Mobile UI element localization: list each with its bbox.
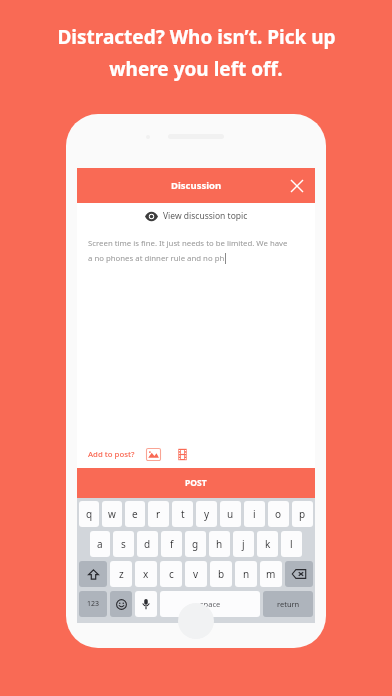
- button[interactable]: v: [185, 561, 207, 587]
- button[interactable]: Add to post?: [88, 449, 135, 460]
- staticText: l: [290, 537, 293, 551]
- button[interactable]: space: [160, 591, 260, 617]
- button[interactable]: g: [185, 531, 206, 557]
- staticText: Screen time is fine. It just needs to be…: [88, 238, 288, 249]
- staticText: v: [193, 567, 199, 581]
- staticText: w: [108, 507, 116, 521]
- staticText: g: [192, 537, 199, 551]
- button[interactable]: p: [292, 501, 313, 527]
- button[interactable]: z: [110, 561, 132, 587]
- button[interactable]: s: [113, 531, 134, 557]
- button[interactable]: w: [102, 501, 122, 527]
- button[interactable]: Close: [286, 175, 308, 197]
- staticText: space: [200, 599, 221, 609]
- button[interactable]: a: [90, 531, 110, 557]
- button[interactable]: Dictate: [135, 591, 157, 617]
- button[interactable]: Emoji: [110, 591, 132, 617]
- staticText: 123: [87, 599, 100, 609]
- button[interactable]: x: [135, 561, 157, 587]
- button[interactable]: Add video: [175, 447, 190, 462]
- button[interactable]: t: [172, 501, 193, 527]
- button[interactable]: e: [125, 501, 145, 527]
- staticText: d: [144, 537, 151, 551]
- staticText: Distracted? Who isn’t. Pick up: [57, 24, 336, 50]
- staticText: i: [253, 507, 256, 521]
- button[interactable]: Discussion: [77, 168, 315, 203]
- staticText: e: [132, 507, 138, 521]
- button[interactable]: l: [281, 531, 302, 557]
- staticText: where you left off.: [109, 56, 283, 82]
- button[interactable]: j: [233, 531, 254, 557]
- button[interactable]: 123: [79, 591, 107, 617]
- staticText: k: [265, 537, 271, 551]
- button[interactable]: Shift: [79, 561, 107, 587]
- staticText: t: [181, 507, 185, 521]
- staticText: f: [170, 537, 174, 551]
- staticText: u: [227, 507, 234, 521]
- button[interactable]: d: [137, 531, 158, 557]
- staticText: c: [169, 567, 174, 581]
- button[interactable]: POST: [77, 468, 315, 498]
- button[interactable]: View discussion topic: [77, 203, 315, 229]
- button[interactable]: b: [210, 561, 232, 587]
- staticText: p: [299, 507, 306, 521]
- staticText: z: [119, 567, 124, 581]
- button[interactable]: Add photo: [146, 447, 161, 462]
- button[interactable]: q: [79, 501, 99, 527]
- button[interactable]: k: [257, 531, 278, 557]
- button[interactable]: m: [260, 561, 282, 587]
- staticText: q: [86, 507, 93, 521]
- staticText: o: [275, 507, 282, 521]
- button[interactable]: return: [263, 591, 313, 617]
- button[interactable]: o: [268, 501, 289, 527]
- staticText: return: [277, 599, 300, 609]
- staticText: h: [216, 537, 223, 551]
- button[interactable]: y: [196, 501, 217, 527]
- button[interactable]: f: [161, 531, 182, 557]
- button[interactable]: c: [160, 561, 182, 587]
- staticText: y: [204, 507, 210, 521]
- button[interactable]: Backspace: [285, 561, 313, 587]
- button[interactable]: i: [244, 501, 265, 527]
- button[interactable]: h: [209, 531, 230, 557]
- button[interactable]: u: [220, 501, 241, 527]
- staticText: s: [121, 537, 126, 551]
- staticText: View discussion topic: [163, 210, 248, 222]
- staticText: x: [143, 567, 149, 581]
- staticText: a no phones at dinner rule and no ph: [88, 253, 225, 264]
- staticText: Discussion: [171, 179, 222, 192]
- staticText: POST: [185, 477, 207, 489]
- staticText: b: [218, 567, 225, 581]
- staticText: r: [156, 507, 161, 521]
- staticText: m: [266, 567, 276, 581]
- staticText: a: [97, 537, 103, 551]
- button[interactable]: n: [235, 561, 257, 587]
- staticText: n: [243, 567, 250, 581]
- staticText: j: [242, 537, 245, 551]
- button[interactable]: r: [148, 501, 169, 527]
